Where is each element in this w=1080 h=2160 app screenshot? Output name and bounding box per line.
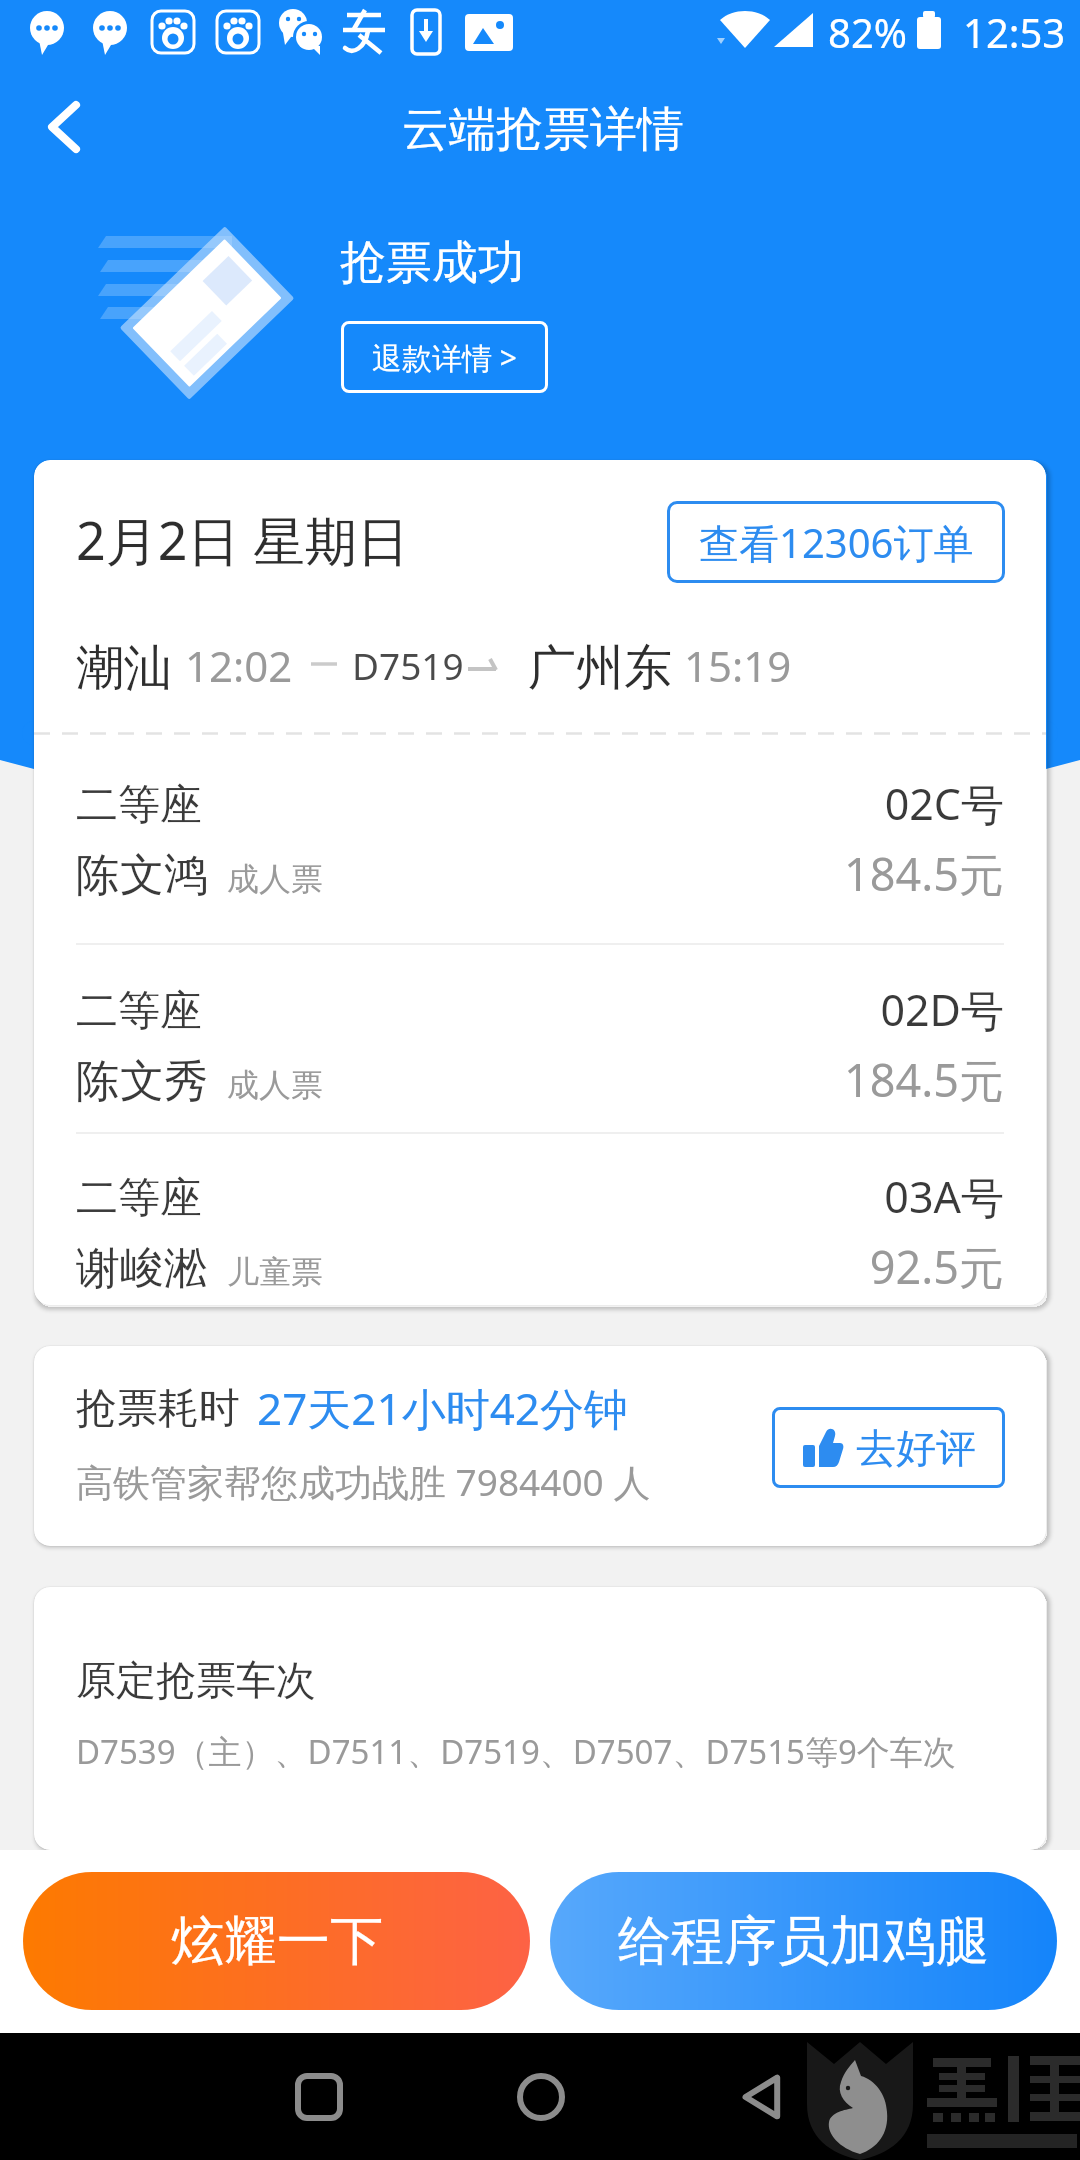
staticText: D7519	[352, 640, 464, 690]
button[interactable]: 二等座	[34, 1171, 1046, 1305]
button[interactable]: 退款详情 >	[341, 321, 548, 393]
button[interactable]: 炫耀一下	[23, 1872, 530, 2010]
staticText: D7539（主）、D7511、D7519、D7507、D7515等9个车次	[76, 1729, 956, 1774]
staticText: 02D号	[76, 980, 1004, 1039]
staticText: 184.5元	[76, 1049, 1004, 1110]
staticText: 2月2日 星期日	[76, 504, 410, 575]
staticText: 184.5元	[76, 843, 1004, 904]
button[interactable]: 查看12306订单	[667, 501, 1005, 583]
staticText: 92.5元	[76, 1236, 1004, 1297]
staticText: 广州东	[528, 638, 672, 698]
staticText: 炫耀一下	[171, 1908, 383, 1975]
staticText: 原定抢票车次	[76, 1655, 316, 1705]
button[interactable]: 二等座	[34, 778, 1046, 920]
button[interactable]: Back	[19, 81, 111, 173]
staticText: 抢票耗时	[76, 1383, 240, 1435]
staticText: 成人票	[227, 859, 323, 899]
staticText: 二等座	[76, 985, 202, 1038]
button[interactable]: Recents	[283, 2061, 355, 2133]
staticText: 12:53	[963, 5, 1066, 59]
staticText: 12:02	[185, 637, 293, 694]
staticText: 15:19	[684, 637, 792, 694]
button[interactable]: 去好评	[772, 1407, 1005, 1488]
staticText: 给程序员加鸡腿	[618, 1908, 989, 1975]
button[interactable]: Home	[505, 2061, 577, 2133]
button[interactable]: 给程序员加鸡腿	[550, 1872, 1057, 2010]
staticText: 潮汕	[76, 638, 172, 698]
staticText: 二等座	[76, 1172, 202, 1225]
button[interactable]: Back	[728, 2061, 800, 2133]
staticText: 82%	[828, 5, 907, 59]
staticText: 二等座	[76, 779, 202, 832]
staticText: 27天21小时42分钟	[257, 1378, 629, 1438]
staticText: 谢峻淞	[76, 1241, 208, 1296]
button[interactable]: 二等座	[34, 984, 1046, 1126]
staticText: 去好评	[856, 1423, 976, 1473]
staticText: 查看12306订单	[699, 515, 974, 570]
staticText: 03A号	[76, 1167, 1004, 1226]
staticText: 抢票成功	[340, 234, 524, 292]
staticText: 高铁管家帮您成功战胜 7984400 人	[76, 1456, 651, 1507]
staticText: 陈文鸿	[76, 848, 208, 903]
staticText: 陈文秀	[76, 1054, 208, 1109]
staticText: 02C号	[76, 774, 1004, 833]
staticText: 成人票	[227, 1065, 323, 1105]
staticText: 儿童票	[227, 1252, 323, 1292]
staticText: 退款详情 >	[372, 337, 517, 378]
staticText: 云端抢票详情	[402, 100, 684, 159]
